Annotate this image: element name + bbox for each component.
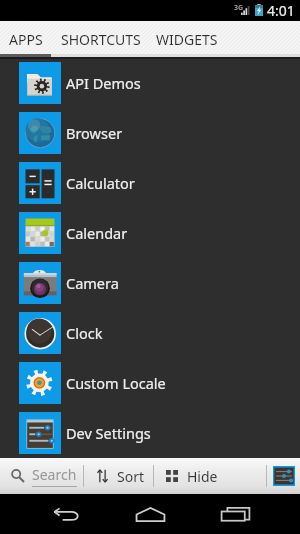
staticText: Calculator	[66, 173, 135, 193]
staticText: Calendar	[66, 223, 128, 243]
staticText: Custom Locale	[66, 373, 166, 393]
button[interactable]: Calculator	[0, 158, 300, 208]
staticText: Search	[32, 465, 77, 484]
button[interactable]: API Demos	[0, 58, 300, 108]
button[interactable]: Back	[43, 494, 89, 534]
staticText: SHORTCUTS	[61, 30, 141, 49]
button[interactable]: Calendar	[0, 208, 300, 258]
button[interactable]: Search	[0, 458, 83, 494]
staticText: WIDGETS	[156, 30, 218, 49]
button[interactable]: APPS	[0, 21, 51, 57]
button[interactable]: Hide	[154, 458, 266, 494]
button[interactable]: Sort	[84, 458, 153, 494]
staticText: Hide	[187, 467, 218, 486]
staticText: Sort	[117, 467, 144, 486]
button[interactable]: Clock	[0, 308, 300, 358]
staticText: API Demos	[66, 73, 141, 93]
staticText: Dev Settings	[66, 423, 151, 443]
button[interactable]: SHORTCUTS	[51, 21, 150, 57]
button[interactable]: Camera	[0, 258, 300, 308]
button[interactable]: Browser	[0, 108, 300, 158]
button[interactable]: Recents	[212, 494, 258, 534]
button[interactable]: Home	[127, 494, 173, 534]
button[interactable]: Dev Settings	[267, 458, 300, 494]
button[interactable]: Dev Settings	[0, 408, 300, 457]
staticText: 3G	[234, 3, 244, 13]
staticText: Clock	[66, 323, 103, 343]
button[interactable]: Custom Locale	[0, 358, 300, 408]
staticText: 4:01	[267, 1, 295, 20]
staticText: APPS	[9, 30, 43, 49]
staticText: Camera	[66, 273, 119, 293]
button[interactable]: WIDGETS	[150, 21, 223, 57]
staticText: Browser	[66, 123, 123, 143]
